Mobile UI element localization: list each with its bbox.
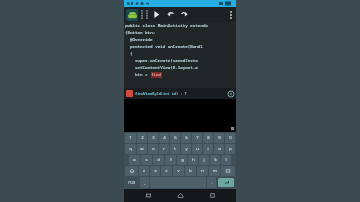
button[interactable]: Undo: [166, 10, 175, 19]
staticText: ,: [144, 180, 146, 186]
button[interactable]: 3: [148, 133, 158, 143]
staticText: 6: [185, 135, 188, 141]
button[interactable]: x: [150, 166, 160, 176]
staticText: m: [213, 168, 217, 174]
button[interactable]: z: [139, 166, 149, 176]
button[interactable]: a: [129, 155, 140, 165]
button[interactable]: App icon: [126, 9, 138, 21]
staticText: p: [229, 146, 232, 152]
staticText: 4: [163, 135, 166, 141]
button[interactable]: 0: [225, 133, 235, 143]
button[interactable]: h: [188, 155, 198, 165]
staticText: z: [143, 168, 145, 174]
staticText: x: [154, 168, 157, 174]
staticText: setContentView(R.layout.a: [135, 65, 198, 71]
staticText: a: [133, 157, 136, 163]
button[interactable]: Back: [204, 189, 220, 202]
button[interactable]: .: [207, 177, 216, 188]
staticText: 0: [229, 135, 232, 141]
button[interactable]: Redo: [180, 10, 189, 19]
button[interactable]: ,: [140, 177, 149, 188]
staticText: v: [177, 168, 180, 174]
staticText: 9: [218, 135, 221, 141]
staticText: {: [130, 51, 133, 57]
staticText: 2: [141, 135, 144, 141]
staticText: d: [157, 157, 160, 163]
button[interactable]: Enter: [218, 178, 234, 187]
staticText: h: [192, 157, 195, 163]
staticText: l: [225, 157, 227, 163]
staticText: 3: [152, 135, 155, 141]
staticText: k: [214, 157, 217, 163]
button[interactable]: 2: [137, 133, 147, 143]
staticText: find: [151, 72, 162, 78]
staticText: .: [211, 180, 213, 186]
staticText: j: [203, 157, 205, 163]
button[interactable]: s: [141, 155, 152, 165]
staticText: r: [163, 146, 165, 152]
button[interactable]: n: [197, 166, 208, 176]
staticText: super.onCreate(savedInsta: [135, 58, 198, 64]
button[interactable]: 4: [159, 133, 169, 143]
staticText: n: [201, 168, 204, 174]
button[interactable]: v: [173, 166, 184, 176]
staticText: 5: [174, 135, 177, 141]
staticText: b: [189, 168, 192, 174]
button[interactable]: u: [192, 144, 202, 154]
button[interactable]: e: [148, 144, 158, 154]
staticText: 7: [196, 135, 199, 141]
button[interactable]: More options: [228, 9, 234, 21]
button[interactable]: d: [153, 155, 164, 165]
button[interactable]: l: [221, 155, 231, 165]
button[interactable]: Info: [227, 90, 234, 97]
button[interactable]: 6: [181, 133, 191, 143]
button[interactable]: 1: [125, 133, 136, 143]
button[interactable]: ?123: [125, 177, 139, 188]
button[interactable]: Home: [172, 189, 188, 202]
button[interactable]: j: [199, 155, 209, 165]
staticText: @Override: [130, 37, 153, 43]
staticText: s: [145, 157, 148, 163]
button[interactable]: Backspace: [221, 166, 235, 176]
staticText: y: [185, 146, 188, 152]
staticText: 8: [207, 135, 210, 141]
button[interactable]: i: [203, 144, 213, 154]
button[interactable]: t: [170, 144, 180, 154]
button[interactable]: o: [214, 144, 224, 154]
button[interactable]: 8: [203, 133, 213, 143]
staticText: e: [152, 146, 155, 152]
staticText: btn =: [135, 72, 151, 78]
button[interactable]: findViewById(int id) : T: [126, 88, 234, 99]
staticText: {Button btn;: [125, 30, 156, 36]
button[interactable]: b: [185, 166, 196, 176]
button[interactable]: 9: [214, 133, 224, 143]
button[interactable]: y: [181, 144, 191, 154]
button[interactable]: Shift: [125, 166, 138, 176]
button[interactable]: m: [209, 166, 220, 176]
button[interactable]: 7: [192, 133, 202, 143]
button[interactable]: p: [225, 144, 235, 154]
staticText: i: [207, 146, 209, 152]
staticText: o: [218, 146, 221, 152]
staticText: u: [196, 146, 199, 152]
staticText: w: [140, 146, 144, 152]
button[interactable]: r: [159, 144, 169, 154]
staticText: public class MainActivity extends: [125, 23, 208, 29]
staticText: ?123: [128, 180, 136, 185]
button[interactable]: g: [177, 155, 187, 165]
staticText: q: [129, 146, 132, 152]
button[interactable]: f: [165, 155, 176, 165]
button[interactable]: k: [210, 155, 220, 165]
staticText: protected void onCreate(Bundl: [130, 44, 203, 50]
button[interactable]: Recents: [140, 189, 156, 202]
button[interactable]: c: [161, 166, 172, 176]
button[interactable]: 5: [170, 133, 180, 143]
button[interactable]: q: [125, 144, 136, 154]
button[interactable]: w: [137, 144, 147, 154]
staticText: 1: [129, 135, 132, 141]
staticText: c: [165, 168, 168, 174]
staticText: findViewById(int id) : T: [135, 91, 227, 96]
button[interactable]: Run: [152, 10, 161, 19]
staticText: g: [181, 157, 184, 163]
